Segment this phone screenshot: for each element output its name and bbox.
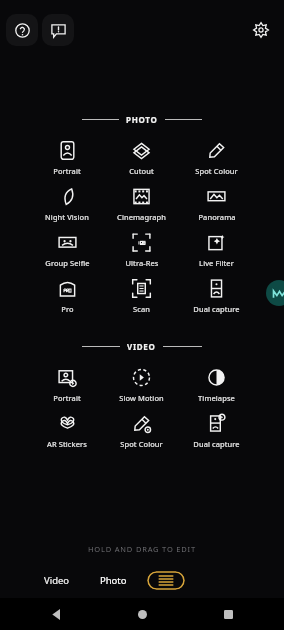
button[interactable]: Back (44, 602, 68, 626)
button[interactable]: Recents (216, 602, 240, 626)
staticText: Cutout (129, 166, 154, 176)
button[interactable]: Video (36, 570, 78, 591)
staticText: Cinemagraph (117, 212, 166, 222)
staticText: Slow Motion (119, 393, 164, 403)
staticText: Timelapse (198, 393, 235, 403)
button[interactable]: Portrait (30, 362, 104, 408)
button[interactable]: AR Stickers (30, 408, 104, 454)
staticText: Scan (133, 304, 150, 314)
staticText: Spot Colour (195, 166, 238, 176)
button[interactable]: Help (6, 14, 38, 46)
staticText: Group Selfie (45, 258, 90, 268)
staticText: Spot Colour (120, 439, 163, 449)
staticText: Dual capture (193, 439, 240, 449)
staticText: Portrait (53, 393, 81, 403)
staticText: Panorama (198, 212, 236, 222)
button[interactable]: Group Selfie (30, 227, 104, 273)
button[interactable]: Slow Motion (104, 362, 179, 408)
button[interactable]: Spot Colour (179, 135, 254, 181)
button[interactable]: Photo (92, 570, 135, 591)
staticText: HOLD AND DRAG TO EDIT (88, 544, 196, 554)
staticText: Night Vision (45, 212, 89, 222)
button[interactable]: Dual capture (179, 408, 254, 454)
button[interactable]: Settings (246, 15, 276, 45)
button[interactable]: Dual capture (179, 273, 254, 319)
button[interactable]: Home (130, 602, 154, 626)
button[interactable]: Spot Colour (104, 408, 179, 454)
staticText: Dual capture (193, 304, 240, 314)
staticText: VIDEO (127, 341, 156, 352)
button[interactable]: Pro (30, 273, 104, 319)
staticText: Ultra-Res (125, 258, 159, 268)
button[interactable]: Portrait (30, 135, 104, 181)
button[interactable]: Live Filter (179, 227, 254, 273)
button[interactable]: Timelapse (179, 362, 254, 408)
button[interactable]: More modes (147, 571, 185, 590)
staticText: Pro (61, 304, 74, 314)
button[interactable]: Scan (104, 273, 179, 319)
staticText: PHOTO (126, 114, 158, 125)
button[interactable]: Cinemagraph (104, 181, 179, 227)
staticText: Portrait (53, 166, 81, 176)
button[interactable]: Motorola (266, 280, 284, 306)
button[interactable]: Night Vision (30, 181, 104, 227)
button[interactable]: Panorama (179, 181, 254, 227)
button[interactable]: Feedback (42, 14, 74, 46)
staticText: Live Filter (199, 258, 234, 268)
staticText: AR Stickers (47, 439, 87, 449)
button[interactable]: Cutout (104, 135, 179, 181)
button[interactable]: Ultra-Res (104, 227, 179, 273)
